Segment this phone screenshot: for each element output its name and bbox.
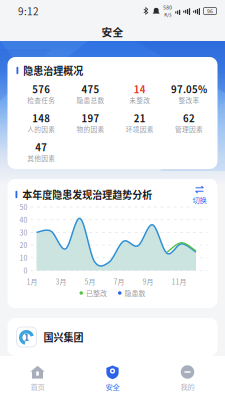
button[interactable]: 切换 <box>189 185 209 204</box>
staticText: 475 <box>81 82 99 96</box>
staticText: 切换 <box>192 194 206 205</box>
staticText: 5月 <box>84 276 95 286</box>
staticText: 安全 <box>105 381 119 392</box>
staticText: 40 <box>19 215 27 225</box>
staticText: 9月 <box>142 276 153 286</box>
staticText: 本年度隐患发现治理趋势分析 <box>22 187 152 202</box>
staticText: 1 <box>24 331 29 343</box>
staticText: 14 <box>134 82 146 96</box>
staticText: 30 <box>19 227 27 237</box>
staticText: 人的因素 <box>27 124 55 134</box>
staticText: 1月 <box>26 276 37 286</box>
staticText: 管理因素 <box>175 124 203 134</box>
button[interactable]: 首页 <box>0 357 75 399</box>
staticText: 物的因素 <box>76 124 104 134</box>
staticText: 首页 <box>30 381 44 392</box>
staticText: 隐患总数 <box>76 95 104 105</box>
button[interactable]: 安全 <box>75 357 150 399</box>
staticText: 197 <box>81 111 99 125</box>
staticText: 其他因素 <box>27 153 55 163</box>
staticText: 580 <box>163 4 172 11</box>
staticText: 3月 <box>55 276 66 286</box>
staticText: 0 <box>23 265 27 275</box>
staticText: 21 <box>134 111 146 125</box>
staticText: 576 <box>32 82 50 96</box>
button[interactable]: 1 <box>7 318 217 356</box>
staticText: 148 <box>32 111 50 125</box>
staticText: 隐患数 <box>124 288 145 298</box>
staticText: 9:12 <box>18 4 39 18</box>
staticText: K/s <box>164 11 171 18</box>
staticText: 20 <box>19 240 27 250</box>
staticText: 96 <box>207 7 213 15</box>
staticText: 47 <box>35 140 47 154</box>
staticText: 隐患治理概况 <box>23 63 83 78</box>
staticText: 97.05% <box>171 82 207 96</box>
staticText: 未整改 <box>129 95 150 105</box>
staticText: 国兴集团 <box>43 330 83 344</box>
button[interactable]: 我的 <box>150 357 225 399</box>
staticText: 10 <box>19 253 27 263</box>
staticText: 安全 <box>101 24 123 39</box>
staticText: 检查任务 <box>27 95 55 105</box>
staticText: 62 <box>183 111 195 125</box>
staticText: 50 <box>19 202 27 212</box>
staticText: 7月 <box>113 276 124 286</box>
staticText: 环境因素 <box>126 124 154 134</box>
staticText: 整改率 <box>178 95 199 105</box>
staticText: 我的 <box>180 381 194 392</box>
staticText: 11月 <box>171 276 186 286</box>
staticText: 已整改 <box>86 288 107 298</box>
